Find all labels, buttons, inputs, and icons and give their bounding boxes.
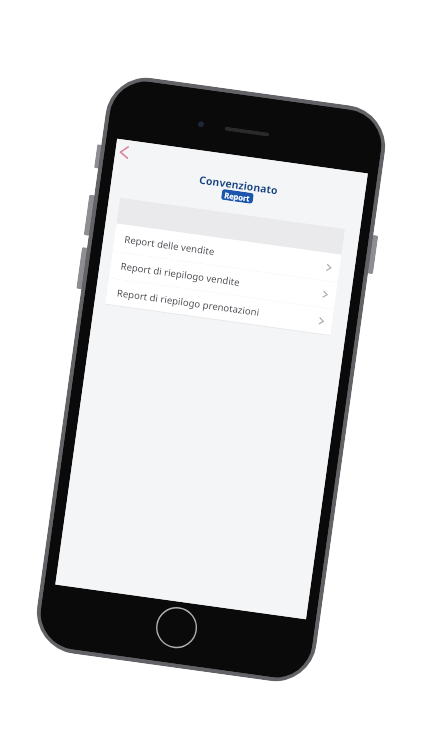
button[interactable]: Back: [114, 139, 141, 166]
button[interactable]: Home: [153, 604, 200, 651]
button[interactable]: Report di riepilogo vendite: [109, 251, 338, 309]
button[interactable]: Report delle vendite: [113, 223, 341, 282]
staticText: Convenzionato: [198, 173, 280, 197]
staticText: Report delle vendite: [124, 233, 215, 258]
staticText: Report di riepilogo vendite: [120, 260, 241, 289]
button[interactable]: Report di riepilogo prenotazioni: [105, 278, 334, 336]
staticText: Report: [224, 190, 251, 204]
staticText: Report di riepilogo prenotazioni: [116, 286, 260, 319]
